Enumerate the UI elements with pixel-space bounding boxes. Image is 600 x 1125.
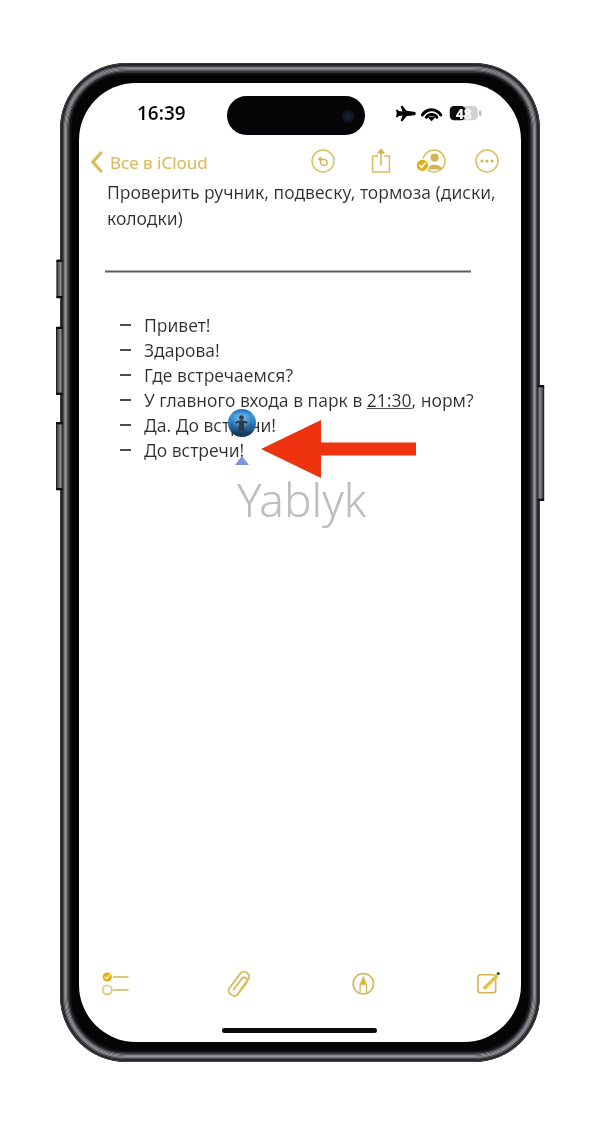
- button[interactable]: More: [474, 148, 500, 174]
- button[interactable]: Markup: [345, 966, 381, 998]
- staticText: Где встречаемся?: [144, 363, 294, 387]
- staticText: 48: [456, 105, 472, 121]
- button[interactable]: New note: [470, 966, 506, 998]
- staticText: До встречи!: [144, 438, 245, 462]
- button[interactable]: Share: [368, 146, 394, 176]
- staticText: Все в iCloud: [110, 151, 208, 174]
- staticText: Проверить ручник, подвеску, тормоза (дис…: [107, 180, 496, 230]
- staticText: У главного входа в парк в 21:30, норм?: [144, 388, 474, 412]
- staticText: 16:39: [137, 100, 186, 126]
- button[interactable]: Checklist: [98, 966, 134, 998]
- button[interactable]: Undo: [310, 148, 336, 174]
- button[interactable]: Все в iCloud: [90, 148, 208, 176]
- staticText: Здарова!: [144, 338, 220, 362]
- button[interactable]: Attach: [222, 966, 258, 998]
- staticText: Да. До встречи!: [144, 413, 277, 437]
- staticText: Привет!: [144, 313, 211, 337]
- button[interactable]: Collaborate: [416, 148, 446, 174]
- staticText: Yablyk: [237, 468, 367, 531]
